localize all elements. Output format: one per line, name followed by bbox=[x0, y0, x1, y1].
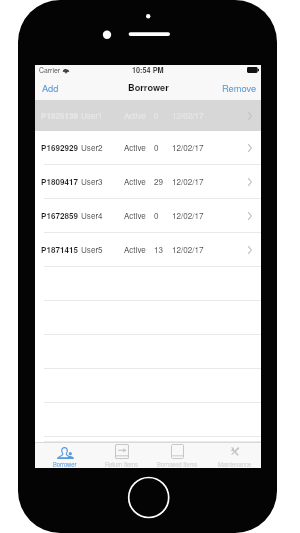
staticText: 12/02/17 bbox=[172, 176, 204, 188]
staticText: Remove bbox=[222, 81, 257, 94]
button[interactable]: Borrowed Items bbox=[149, 442, 206, 468]
staticText: Return Items bbox=[105, 460, 138, 468]
staticText: P1692929 bbox=[41, 142, 78, 154]
staticText: Active bbox=[124, 176, 146, 188]
staticText: Active bbox=[124, 110, 146, 122]
staticText: 12/02/17 bbox=[172, 244, 204, 256]
button[interactable]: P1672859 bbox=[35, 199, 261, 233]
staticText: 0 bbox=[154, 142, 159, 154]
staticText: 29 bbox=[154, 176, 164, 188]
staticText: 0 bbox=[154, 210, 159, 222]
staticText: 12/02/17 bbox=[172, 142, 204, 154]
button[interactable]: P1809417 bbox=[35, 165, 261, 199]
button[interactable]: P1692929 bbox=[35, 131, 261, 165]
staticText: User1 bbox=[81, 110, 103, 122]
staticText: User4 bbox=[81, 210, 103, 222]
button[interactable]: Return Items bbox=[93, 442, 149, 468]
staticText: Borrowed Items bbox=[157, 460, 198, 468]
staticText: P1871415 bbox=[41, 244, 78, 256]
staticText: User5 bbox=[81, 244, 103, 256]
staticText: Maintenance bbox=[218, 460, 252, 468]
staticText: Active bbox=[124, 210, 146, 222]
staticText: 0 bbox=[154, 110, 159, 122]
staticText: Borrower bbox=[128, 81, 169, 94]
staticText: Borrower bbox=[53, 460, 77, 468]
button[interactable]: Maintenance bbox=[206, 442, 263, 468]
button[interactable]: Borrower bbox=[37, 442, 93, 468]
button[interactable]: P1871415 bbox=[35, 233, 261, 267]
staticText: Carrier bbox=[39, 65, 61, 75]
staticText: Add bbox=[42, 81, 59, 94]
staticText: P1809417 bbox=[41, 176, 78, 188]
button[interactable]: Add bbox=[40, 77, 61, 98]
staticText: Active bbox=[124, 142, 146, 154]
staticText: User2 bbox=[81, 142, 103, 154]
staticText: User3 bbox=[81, 176, 103, 188]
staticText: 10:54 PM bbox=[132, 65, 164, 75]
staticText: 12/02/17 bbox=[172, 110, 204, 122]
staticText: P1825139 bbox=[41, 110, 78, 122]
button[interactable]: Remove bbox=[220, 77, 259, 98]
staticText: Active bbox=[124, 244, 146, 256]
staticText: P1672859 bbox=[41, 210, 78, 222]
staticText: 13 bbox=[154, 244, 164, 256]
staticText: 12/02/17 bbox=[172, 210, 204, 222]
